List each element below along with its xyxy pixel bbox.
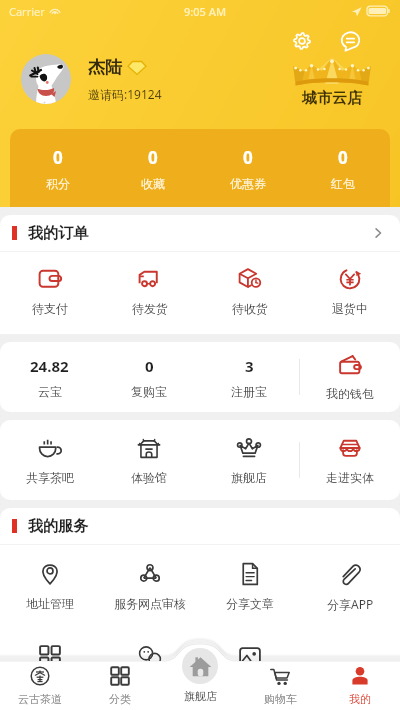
staticText: 红包 [331, 176, 355, 191]
staticText: 微信绑定 [126, 678, 174, 693]
button[interactable]: 服务网点审核 [100, 561, 200, 611]
staticText: 复购宝 [131, 384, 167, 399]
staticText: 云古茶道 [18, 692, 62, 706]
button[interactable]: Messages [335, 26, 365, 56]
button[interactable]: 购物车 [240, 661, 320, 710]
staticText: 待发货 [132, 301, 168, 316]
button[interactable]: 24.82 [0, 342, 99, 412]
staticText: 走进实体 [326, 470, 374, 485]
button[interactable]: 云古茶道 [0, 661, 80, 710]
staticText: 3 [245, 356, 254, 376]
button[interactable]: 分享文章 [200, 561, 300, 611]
staticText: 0 [148, 146, 158, 169]
button[interactable]: Flagship store [155, 661, 245, 710]
button[interactable]: 我的相册 [200, 643, 300, 693]
button[interactable]: 微信绑定 [100, 643, 200, 693]
button[interactable]: 旗舰店 [199, 435, 299, 485]
staticText: 旗舰店 [184, 689, 217, 703]
staticText: 我的订单 [28, 224, 88, 243]
staticText: 分类 [109, 692, 131, 706]
staticText: 城市云店 [302, 89, 362, 108]
button[interactable]: Avatar [21, 54, 71, 104]
staticText: 待收货 [232, 301, 268, 316]
staticText: 购物车 [264, 692, 297, 706]
staticText: Carrier [9, 4, 45, 19]
staticText: 服务网点审核 [114, 596, 186, 611]
staticText: 我的 [349, 692, 371, 706]
button[interactable]: 体验馆 [99, 435, 199, 485]
button[interactable]: Settings [287, 26, 317, 56]
button[interactable]: 待收货 [200, 266, 300, 316]
staticText: 0 [338, 146, 348, 169]
staticText: 9:05 AM [184, 4, 227, 19]
staticText: 分享APP [327, 596, 374, 612]
staticText: 0 [53, 146, 63, 169]
staticText: 邀请码:19124 [88, 86, 162, 102]
staticText: 云宝 [38, 384, 62, 399]
staticText: 我的服务 [28, 517, 88, 536]
staticText: 分享文章 [226, 596, 274, 611]
staticText: 我的二维码 [20, 678, 80, 693]
staticText: 0 [145, 356, 154, 376]
button[interactable]: 我的 [320, 661, 400, 710]
staticText: 退货中 [332, 301, 368, 316]
button[interactable]: 0 [10, 129, 105, 207]
staticText: 旗舰店 [231, 470, 267, 485]
staticText: 待支付 [32, 301, 68, 316]
button[interactable]: 我的订单 [0, 215, 400, 252]
button[interactable]: 分类 [80, 661, 160, 710]
other: Flagship store [182, 648, 218, 684]
staticText: 体验馆 [131, 470, 167, 485]
button[interactable]: 走进实体 [300, 435, 400, 485]
button[interactable]: 0 [200, 129, 295, 207]
staticText: 收藏 [141, 176, 165, 191]
staticText: 24.82 [30, 356, 69, 376]
staticText: 优惠券 [230, 176, 266, 191]
staticText: 地址管理 [26, 596, 74, 611]
button[interactable]: 我的二维码 [0, 643, 100, 693]
button[interactable]: 分享APP [300, 561, 400, 612]
button[interactable]: 共享茶吧 [0, 435, 99, 485]
staticText: 0 [243, 146, 253, 169]
staticText: 我的钱包 [326, 386, 374, 401]
staticText: 注册宝 [231, 384, 267, 399]
button[interactable]: 我的钱包 [300, 342, 400, 412]
button[interactable]: 0 [99, 342, 199, 412]
button[interactable]: 待发货 [100, 266, 200, 316]
button[interactable]: 3 [199, 342, 299, 412]
button[interactable]: 退货中 [300, 266, 400, 316]
button[interactable]: 0 [105, 129, 200, 207]
staticText: 积分 [46, 176, 70, 191]
button[interactable]: 地址管理 [0, 561, 100, 611]
button[interactable]: 0 [295, 129, 390, 207]
staticText: 共享茶吧 [26, 470, 74, 485]
button[interactable]: 待支付 [0, 266, 100, 316]
staticText: 杰陆 [88, 57, 122, 78]
